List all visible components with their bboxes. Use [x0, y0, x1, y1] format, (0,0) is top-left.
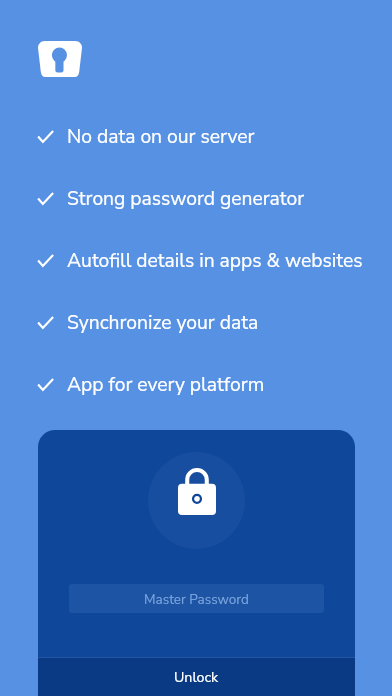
button[interactable]: No data on our server: [37, 105, 392, 167]
button[interactable]: Autofill details in apps & websites: [37, 229, 392, 291]
button[interactable]: Strong password generator: [37, 167, 392, 229]
button[interactable]: App for every platform: [37, 353, 392, 415]
other: App logo: [38, 41, 82, 77]
staticText: Autofill details in apps & websites: [67, 247, 363, 273]
staticText: Synchronize your data: [67, 309, 259, 335]
staticText: Unlock: [174, 668, 219, 687]
button[interactable]: Synchronize your data: [37, 291, 392, 353]
button[interactable]: Master Password: [69, 584, 324, 613]
button[interactable]: Unlock: [38, 658, 355, 696]
staticText: App for every platform: [67, 371, 265, 397]
staticText: No data on our server: [67, 123, 255, 149]
staticText: Master Password: [144, 590, 249, 608]
staticText: Strong password generator: [67, 185, 305, 211]
